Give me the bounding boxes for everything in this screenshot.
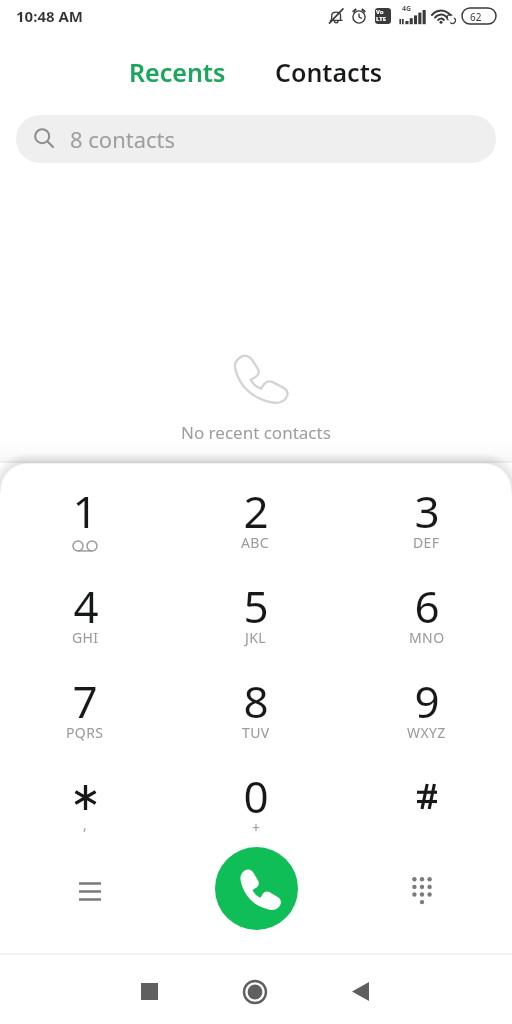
staticText: Vo [376, 8, 384, 16]
staticText: WXYZ [407, 723, 446, 742]
staticText: TUV [242, 723, 270, 742]
staticText: ABC [241, 533, 270, 552]
staticText: 8 contacts [70, 124, 176, 154]
button[interactable]: 5 [170, 576, 341, 671]
staticText: DEF [413, 533, 440, 552]
staticText: 9 [414, 671, 440, 731]
button[interactable]: 8 [170, 671, 341, 766]
button[interactable]: 2 [170, 463, 341, 576]
staticText: GHI [72, 628, 99, 647]
button[interactable]: Home [233, 970, 277, 1014]
staticText: , [83, 815, 88, 834]
button[interactable]: 7 [0, 671, 170, 766]
button[interactable]: Dialpad [394, 862, 450, 918]
button[interactable]: Call [215, 847, 298, 930]
staticText: 62 [470, 10, 482, 24]
button[interactable]: Back [338, 969, 382, 1013]
button[interactable]: Call log options [62, 863, 118, 919]
button[interactable]: Contacts [261, 45, 397, 93]
staticText: 0 [243, 766, 269, 826]
button[interactable]: Recent apps [127, 969, 171, 1013]
staticText: 10:48 AM [16, 6, 83, 26]
staticText: Recents [129, 55, 226, 83]
button[interactable]: 3 [341, 463, 512, 576]
button[interactable]: , [0, 766, 170, 861]
button[interactable]: 8 contacts [16, 115, 496, 163]
button[interactable]: 9 [341, 671, 512, 766]
button[interactable]: 4 [0, 576, 170, 671]
staticText: 4 [73, 576, 99, 636]
button[interactable] [341, 766, 512, 861]
staticText: 1 [72, 481, 98, 541]
staticText: PQRS [66, 723, 104, 742]
staticText: 2 [243, 481, 269, 541]
staticText: 8 [243, 671, 269, 731]
staticText: 5 [243, 576, 269, 636]
button[interactable]: 1 [0, 463, 170, 576]
staticText: No recent contacts [181, 421, 331, 444]
staticText: MNO [409, 628, 445, 647]
staticText: Contacts [275, 55, 383, 83]
button[interactable]: 0 [170, 766, 341, 861]
staticText: LTE [376, 15, 387, 23]
button[interactable]: 6 [341, 576, 512, 671]
staticText: 4G [402, 4, 412, 14]
staticText: JKL [245, 628, 267, 647]
staticText: 6 [414, 576, 440, 636]
staticText: + [252, 818, 261, 837]
staticText: 3 [414, 481, 440, 541]
button[interactable]: Recents [115, 45, 240, 93]
staticText: 7 [72, 671, 98, 731]
